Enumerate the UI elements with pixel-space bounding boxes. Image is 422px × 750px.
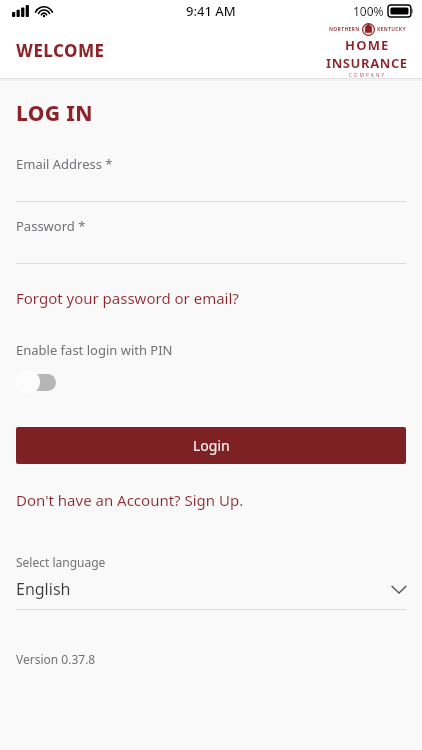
staticText: WELCOME — [16, 39, 105, 62]
staticText: INSURANCE — [326, 54, 408, 72]
button[interactable]: Forgot your password or email? — [16, 288, 239, 308]
button[interactable]: Don't have an Account? Sign Up. — [16, 490, 244, 510]
staticText: KENTUCKY — [377, 26, 406, 33]
staticText: Don't have an Account? Sign Up. — [16, 490, 244, 510]
staticText: Version 0.37.8 — [16, 651, 96, 667]
button[interactable]: English — [16, 578, 406, 610]
staticText: 100% — [353, 3, 384, 19]
staticText: HOME — [345, 36, 390, 54]
button[interactable]: Login — [16, 427, 406, 464]
staticText: LOG IN — [16, 99, 93, 128]
staticText: C O M P A N Y — [349, 72, 385, 78]
staticText: English — [16, 578, 71, 600]
staticText: Password * — [16, 217, 86, 235]
staticText: Login — [193, 436, 230, 455]
staticText: Forgot your password or email? — [16, 288, 239, 308]
staticText: Enable fast login with PIN — [16, 341, 173, 359]
button[interactable]: Enable fast login with PIN toggle, off — [16, 370, 56, 394]
staticText: NORTHERN — [329, 26, 360, 33]
staticText: 9:41 AM — [186, 2, 236, 20]
staticText: Select language — [16, 554, 106, 570]
staticText: Email Address * — [16, 155, 113, 173]
